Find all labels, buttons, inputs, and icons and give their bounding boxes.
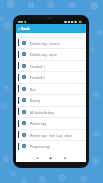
button[interactable]: All India Airbag [16,106,86,117]
staticText: Bank [21,26,30,31]
staticText: Details tag : open [30,52,58,56]
staticText: All India Airbag [30,110,54,114]
button[interactable]: Football 1 [16,60,86,71]
staticText: Details tag : service [30,41,60,45]
button[interactable]: Winter tag [16,117,86,129]
button[interactable]: Winter tag : min, bus, value [16,129,86,140]
other: Back [18,28,20,30]
button[interactable]: Bus [16,83,86,94]
button[interactable]: Details tag : open [16,48,86,60]
staticText: Racing [30,98,41,102]
button[interactable]: Back [16,24,86,33]
button[interactable]: Racing [16,94,86,106]
staticText: Progress tag [30,144,50,148]
staticText: Football 1 [30,64,46,68]
staticText: Football 2 [30,75,46,79]
staticText: Winter tag : min, bus, value [30,133,73,137]
button[interactable]: Progress tag [16,140,86,152]
staticText: Winter tag [30,121,47,125]
staticText: Bus [30,87,36,91]
button[interactable]: Football 2 [16,71,86,83]
button[interactable]: Details tag : service [16,37,86,48]
